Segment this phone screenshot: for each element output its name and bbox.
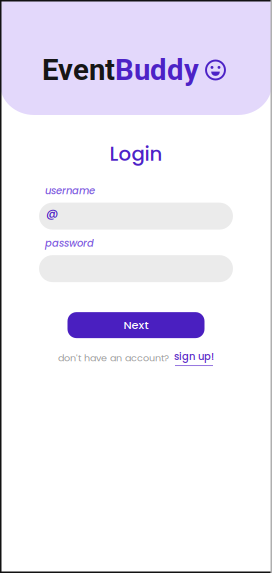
button[interactable]: Next bbox=[67, 312, 204, 338]
staticText: password bbox=[45, 236, 94, 250]
staticText: username bbox=[45, 184, 95, 198]
staticText: @ bbox=[46, 205, 58, 222]
staticText: Buddy bbox=[115, 53, 199, 87]
button[interactable]: sign up! bbox=[174, 350, 214, 366]
staticText: Event bbox=[42, 53, 115, 87]
staticText: sign up! bbox=[174, 350, 214, 363]
staticText: don't have an account? bbox=[58, 351, 169, 364]
staticText: Login bbox=[109, 140, 162, 168]
staticText: Next bbox=[123, 317, 148, 333]
